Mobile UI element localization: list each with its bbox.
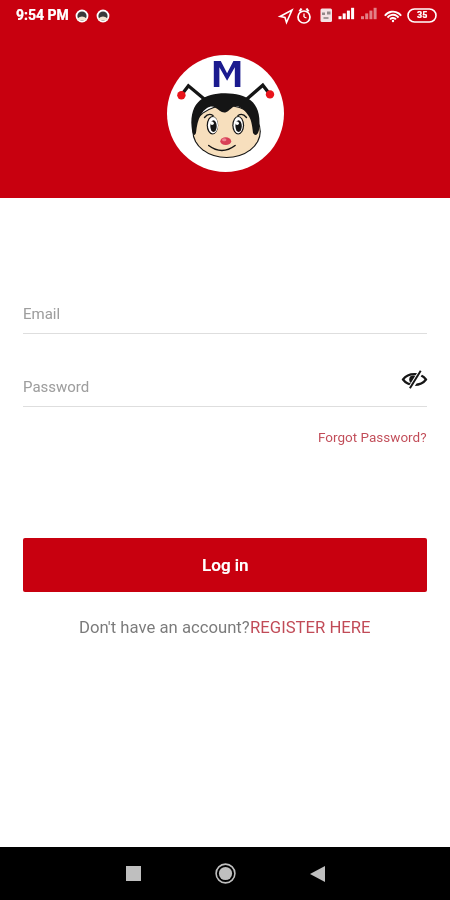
button[interactable]: Recent apps — [108, 847, 158, 900]
staticText: Email — [23, 305, 61, 323]
button[interactable]: Forgot Password? — [318, 429, 427, 445]
staticText: 35 — [417, 10, 428, 21]
button[interactable]: REGISTER HERE — [250, 618, 371, 638]
staticText: Don't have an account? — [79, 618, 250, 638]
button[interactable]: Log in — [23, 538, 427, 592]
button[interactable]: Home — [200, 847, 250, 900]
button[interactable]: Password — [23, 370, 427, 406]
staticText: 9:54 PM — [16, 7, 69, 23]
button[interactable]: Show password — [399, 364, 429, 394]
staticText: Password — [23, 378, 90, 396]
button[interactable]: Back — [292, 847, 342, 900]
staticText: Log in — [202, 555, 249, 575]
button[interactable]: Email — [23, 297, 427, 333]
